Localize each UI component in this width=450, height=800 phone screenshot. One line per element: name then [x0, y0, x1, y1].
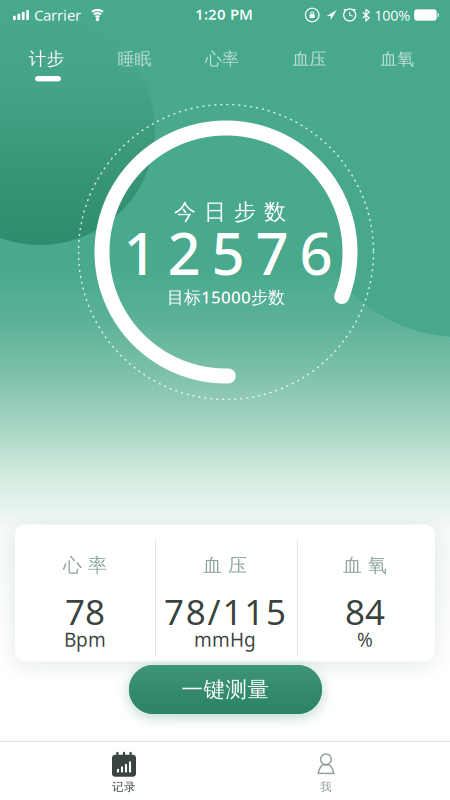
staticText: 睡眠 [117, 48, 151, 70]
staticText: 1 [123, 213, 156, 292]
staticText: 今 [174, 198, 196, 226]
staticText: 5 [211, 213, 244, 292]
staticText: 步 [234, 198, 256, 226]
staticText: 血氧 [380, 48, 414, 70]
staticText: 心 [63, 553, 82, 577]
staticText: 我 [320, 780, 332, 794]
staticText: 1:20 PM [195, 4, 253, 24]
staticText: 率 [88, 553, 107, 577]
staticText: 100% [374, 5, 410, 25]
staticText: 一键测量 [181, 676, 269, 703]
staticText: 数 [264, 198, 286, 226]
staticText: / [208, 588, 221, 635]
staticText: % [357, 627, 373, 652]
staticText: 1 [244, 588, 264, 635]
staticText: 1 [222, 588, 242, 635]
staticText: 血 [343, 553, 362, 577]
button[interactable]: 血氧 [353, 48, 441, 70]
button[interactable]: 计步 [3, 48, 91, 70]
button[interactable]: 记录 [64, 747, 184, 799]
staticText: 2 [167, 213, 200, 292]
staticText: mmHg [194, 627, 256, 652]
staticText: 8 [345, 588, 365, 635]
button[interactable]: 我 [266, 747, 386, 799]
staticText: 5 [266, 588, 286, 635]
staticText: 4 [365, 588, 385, 635]
staticText: 记录 [112, 780, 136, 794]
button[interactable]: 一键测量 [129, 665, 322, 714]
button[interactable]: 心率 [178, 48, 266, 70]
staticText: 血 [203, 553, 222, 577]
staticText: Bpm [64, 627, 106, 652]
staticText: 心率 [205, 48, 239, 70]
staticText: 7 [255, 213, 288, 292]
staticText: Carrier [34, 5, 81, 25]
staticText: 目标15000步数 [167, 285, 285, 309]
staticText: 7 [164, 588, 184, 635]
button[interactable]: 睡眠 [91, 48, 178, 70]
staticText: 氧 [368, 553, 387, 577]
staticText: 8 [85, 588, 105, 635]
staticText: 血压 [293, 48, 327, 70]
staticText: 8 [186, 588, 206, 635]
staticText: 7 [65, 588, 85, 635]
staticText: 压 [228, 553, 247, 577]
staticText: 计步 [29, 48, 65, 70]
button[interactable]: 血压 [266, 48, 353, 70]
staticText: 日 [204, 198, 226, 226]
staticText: 6 [299, 213, 332, 292]
